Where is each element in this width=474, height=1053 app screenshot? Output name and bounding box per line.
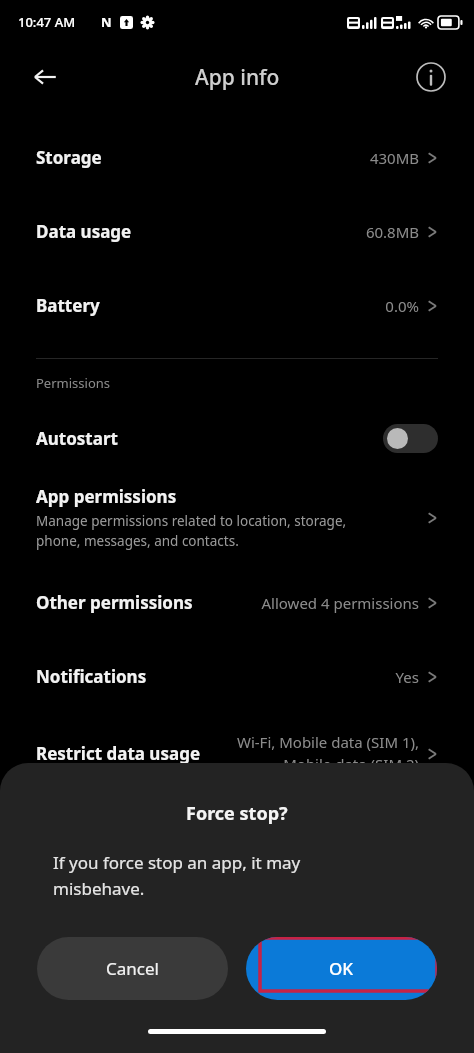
button[interactable]: OK [246, 937, 437, 1000]
staticText: Other permissions [36, 591, 193, 614]
staticText: Notifications [36, 665, 147, 688]
staticText: Yes [239, 667, 419, 687]
staticText: App permissions [36, 485, 177, 508]
staticText: If you force stop an app, it may misbeha… [53, 851, 301, 900]
staticText: 60.8MB [239, 222, 419, 242]
staticText: N [101, 13, 112, 31]
button[interactable]: Data usage [0, 194, 474, 268]
button[interactable]: Cancel [37, 937, 228, 1000]
button[interactable]: Battery [0, 268, 474, 342]
staticText: Force stop? [186, 801, 288, 826]
button[interactable]: Restrict data usage [0, 713, 474, 793]
staticText: 10:47 AM [18, 13, 76, 31]
staticText: Data usage [36, 220, 132, 243]
button[interactable]: Storage [0, 120, 474, 194]
button[interactable]: App details [409, 55, 453, 99]
staticText: 0.0% [239, 296, 419, 316]
staticText: Wi-Fi, Mobile data (SIM 1), Mobile data … [234, 732, 419, 775]
button[interactable]: Other permissions [0, 565, 474, 639]
staticText: Battery [36, 294, 100, 317]
staticText: OK [329, 957, 354, 980]
staticText: Cancel [106, 957, 159, 980]
staticText: Restrict data usage [36, 742, 201, 765]
staticText: Storage [36, 146, 102, 169]
staticText: Allowed 4 permissions [239, 593, 419, 613]
staticText: 430MB [239, 148, 419, 168]
button[interactable]: App permissions [0, 469, 474, 565]
staticText: Permissions [36, 374, 111, 392]
button[interactable]: Autostart [0, 407, 474, 469]
button[interactable]: Back [22, 54, 68, 100]
staticText: Autostart [36, 427, 118, 450]
staticText: Manage permissions related to location, … [36, 512, 347, 550]
staticText: App info [195, 63, 280, 92]
button[interactable]: Notifications [0, 639, 474, 713]
